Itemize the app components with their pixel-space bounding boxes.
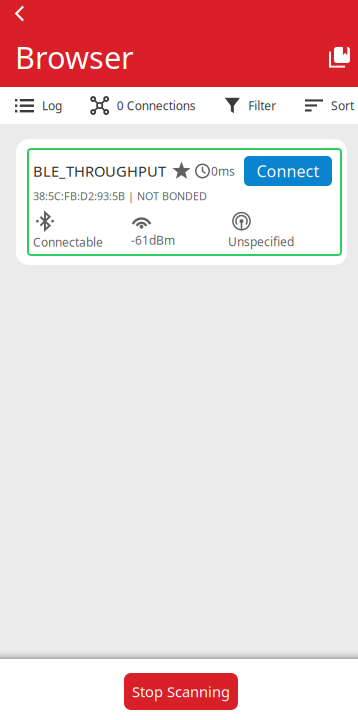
button[interactable]: Stop Scanning bbox=[124, 673, 238, 710]
button[interactable]: Back bbox=[0, 0, 46, 30]
staticText: Sort bbox=[331, 97, 354, 113]
staticText: Connect bbox=[256, 160, 319, 182]
button[interactable]: Log bbox=[15, 87, 62, 124]
staticText: 38:5C:FB:D2:93:5B | NOT BONDED bbox=[33, 189, 207, 203]
button[interactable]: Saved devices bbox=[312, 31, 358, 77]
staticText: Connectable bbox=[33, 234, 103, 250]
button[interactable]: 0 Connections bbox=[91, 87, 196, 124]
staticText: Filter bbox=[248, 97, 276, 113]
staticText: Browser bbox=[15, 37, 134, 77]
button[interactable]: Connect bbox=[244, 156, 332, 186]
staticText: -61dBm bbox=[131, 232, 175, 248]
staticText: Log bbox=[42, 97, 62, 113]
button[interactable]: Sort bbox=[305, 87, 354, 124]
staticText: Stop Scanning bbox=[132, 682, 230, 701]
staticText: 0ms bbox=[211, 163, 235, 179]
staticText: BLE_THROUGHPUT bbox=[33, 161, 166, 181]
staticText: 0 Connections bbox=[117, 97, 196, 113]
button[interactable]: Filter bbox=[224, 87, 276, 124]
staticText: Unspecified bbox=[228, 234, 294, 250]
